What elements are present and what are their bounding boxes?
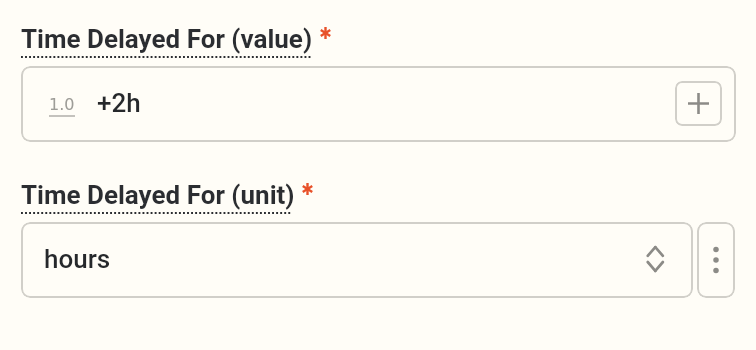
button[interactable]: 1.0 [21,66,736,142]
staticText: 1.0 [49,95,75,114]
staticText: +2h [97,88,141,118]
staticText: Time Delayed For (unit) [21,180,295,210]
button[interactable]: hours [21,222,693,298]
staticText: Time Delayed For (value) [21,24,313,54]
staticText: hours [44,244,111,274]
button[interactable]: More options [697,222,735,298]
button[interactable]: Add [675,81,722,126]
